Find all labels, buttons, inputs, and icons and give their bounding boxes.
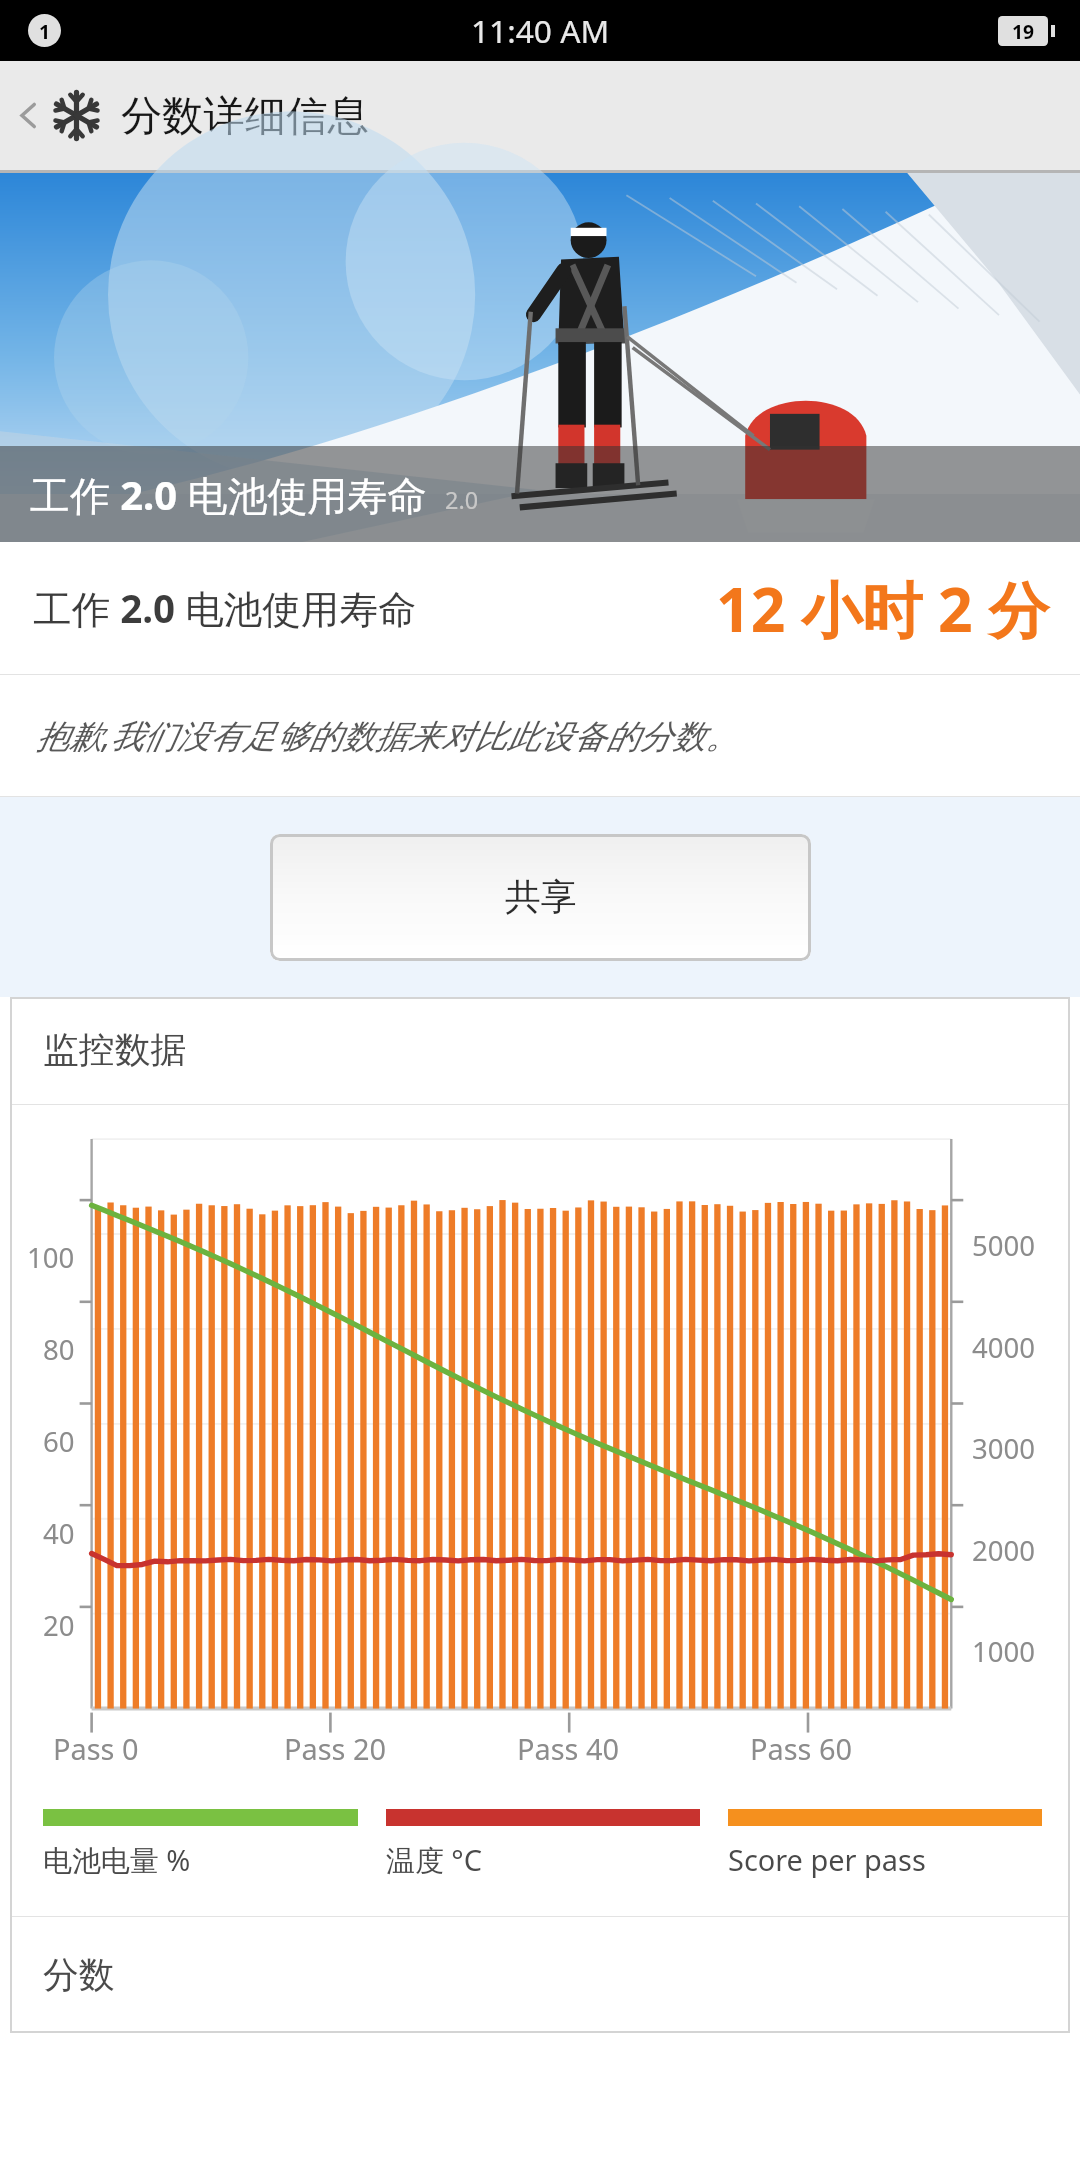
staticText: 3000: [972, 1430, 1036, 1468]
staticText: Pass 20: [284, 1729, 387, 1768]
staticText: Score per pass: [728, 1840, 926, 1879]
button[interactable]: 工作 2.0 电池使用寿命: [0, 542, 1080, 674]
staticText: 分数详细信息: [121, 90, 369, 142]
staticText: 共享: [505, 875, 577, 920]
staticText: 11:40 AM: [471, 9, 610, 52]
staticText: 60: [43, 1423, 75, 1461]
staticText: 4000: [972, 1329, 1036, 1367]
staticText: 抱歉,我们没有足够的数据来对比此设备的分数。: [36, 713, 739, 758]
staticText: 1000: [972, 1633, 1036, 1671]
staticText: 温度 °C: [386, 1840, 483, 1880]
staticText: 19: [1012, 18, 1035, 44]
staticText: Pass 40: [517, 1729, 620, 1768]
staticText: 电池电量 %: [43, 1840, 191, 1880]
staticText: Pass 0: [53, 1729, 139, 1768]
staticText: 5000: [972, 1227, 1036, 1265]
staticText: 监控数据: [43, 1028, 187, 1073]
staticText: 2.0: [445, 484, 479, 516]
staticText: 20: [43, 1607, 75, 1645]
button[interactable]: 共享: [270, 834, 811, 961]
staticText: 工作 2.0 电池使用寿命: [30, 467, 428, 522]
staticText: 2000: [972, 1532, 1036, 1570]
staticText: Pass 60: [750, 1729, 853, 1768]
staticText: 12 小时 2 分: [716, 567, 1050, 650]
staticText: 80: [43, 1331, 75, 1369]
staticText: 1: [39, 18, 51, 44]
staticText: 工作 2.0 电池使用寿命: [33, 582, 417, 635]
staticText: 分数: [43, 1953, 115, 1998]
staticText: 40: [43, 1515, 75, 1553]
button[interactable]: Back: [8, 88, 369, 143]
staticText: 100: [27, 1239, 75, 1277]
